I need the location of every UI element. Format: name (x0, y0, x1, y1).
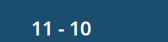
staticText: 11 - 10 (31, 14, 91, 41)
button[interactable]: 11 - 10 (0, 0, 168, 42)
